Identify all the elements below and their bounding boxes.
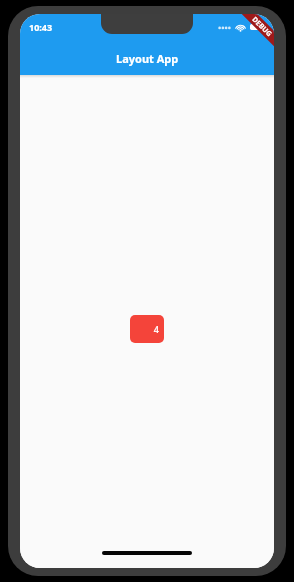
staticText: Layout App <box>116 51 179 66</box>
button[interactable]: 4 <box>130 315 164 343</box>
staticText: 4 <box>153 323 159 335</box>
staticText: DEBUG <box>250 15 274 39</box>
staticText: 10:43 <box>29 21 53 33</box>
